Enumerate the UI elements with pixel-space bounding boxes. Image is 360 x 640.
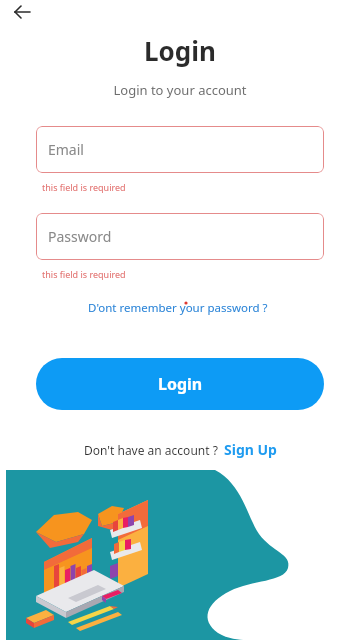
button[interactable]: D'ont remember your password ? <box>86 298 270 318</box>
staticText: this field is required <box>42 268 126 280</box>
button[interactable]: Password <box>36 213 324 260</box>
button[interactable]: Login <box>36 358 324 410</box>
staticText: Password <box>48 227 112 246</box>
staticText: D'ont remember your password ? <box>88 300 268 316</box>
staticText: this field is required <box>42 181 126 193</box>
button[interactable]: Back <box>6 0 40 34</box>
staticText: Login <box>0 33 360 68</box>
button[interactable]: Email <box>36 126 324 173</box>
staticText: Email <box>48 140 84 159</box>
staticText: Don't have an account ? <box>84 442 218 458</box>
staticText: Login to your account <box>0 81 360 99</box>
staticText: Login <box>158 373 203 395</box>
staticText: Sign Up <box>224 440 277 459</box>
button[interactable]: Sign Up <box>224 440 277 459</box>
